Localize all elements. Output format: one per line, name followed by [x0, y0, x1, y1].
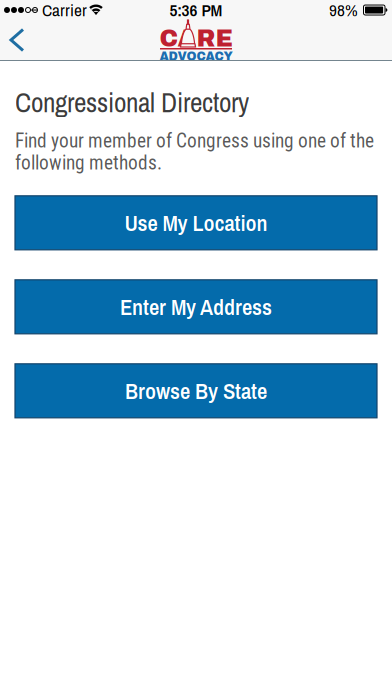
button[interactable]: Back — [0, 20, 41, 59]
staticText: Find your member of Congress using one o… — [15, 129, 374, 152]
button[interactable]: Use My Location — [15, 196, 377, 250]
staticText: ADVOCACY — [159, 50, 232, 63]
staticText: Browse By State — [125, 376, 267, 406]
staticText: following methods. — [15, 151, 162, 174]
staticText: CARE — [159, 25, 232, 51]
button[interactable]: Enter My Address — [15, 280, 377, 334]
staticText: 5:36 PM — [169, 0, 222, 22]
button[interactable]: Browse By State — [15, 364, 377, 418]
staticText: Congressional Directory — [15, 84, 249, 121]
staticText: Enter My Address — [120, 292, 272, 322]
staticText: Carrier — [42, 0, 87, 22]
staticText: Use My Location — [124, 208, 267, 238]
staticText: 98% — [329, 0, 358, 22]
